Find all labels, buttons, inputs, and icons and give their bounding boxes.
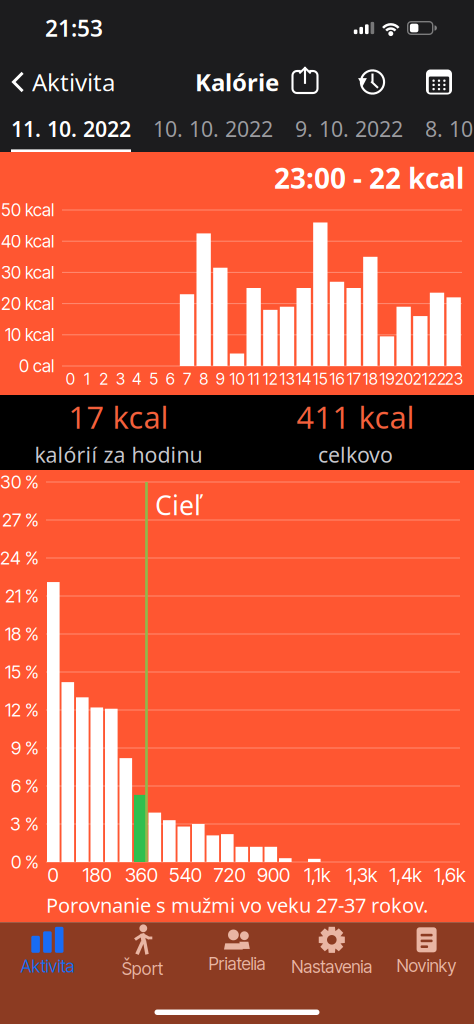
staticText: 15 %	[5, 661, 39, 683]
staticText: 9	[216, 369, 225, 389]
staticText: celkovo	[318, 440, 393, 468]
staticText: 6 %	[11, 775, 39, 797]
staticText: 30 kcal	[1, 262, 54, 283]
staticText: Aktivita	[32, 66, 115, 98]
staticText: 11. 10. 2022	[11, 114, 131, 143]
staticText: 18	[363, 369, 378, 389]
staticText: 16	[329, 369, 344, 389]
staticText: Novinky	[397, 955, 457, 976]
staticText: 2	[99, 369, 108, 389]
staticText: Cieľ	[155, 487, 201, 523]
staticText: 17	[347, 369, 361, 389]
staticText: 13	[279, 369, 294, 389]
button[interactable]: Zdieľať	[279, 56, 331, 108]
staticText: 18 %	[5, 623, 39, 645]
button[interactable]: Šport	[95, 923, 190, 981]
staticText: 8. 10. 2022	[425, 114, 474, 143]
staticText: 1	[84, 369, 90, 389]
staticText: 5	[149, 369, 158, 389]
button[interactable]: 10. 10. 2022	[142, 108, 284, 152]
button[interactable]: Kalendár	[413, 56, 465, 108]
staticText: 540	[169, 863, 202, 887]
button[interactable]: 11. 10. 2022	[0, 108, 142, 152]
staticText: 14	[296, 369, 312, 389]
staticText: 12	[263, 369, 278, 389]
staticText: kalórií za hodinu	[34, 440, 202, 468]
staticText: 27 %	[2, 509, 39, 531]
staticText: 7	[183, 369, 191, 389]
staticText: 23:00 - 22 kcal	[274, 159, 464, 197]
staticText: 4	[132, 369, 142, 389]
staticText: 10. 10. 2022	[153, 114, 273, 143]
button[interactable]: 9. 10. 2022	[284, 108, 414, 152]
staticText: 8	[199, 369, 208, 389]
staticText: 0	[66, 369, 75, 389]
staticText: 3 %	[10, 813, 39, 835]
button[interactable]: 8. 10. 2022	[414, 108, 474, 152]
staticText: Priatelia	[208, 953, 265, 974]
staticText: 12 %	[5, 699, 39, 721]
staticText: 9 %	[11, 737, 39, 759]
staticText: 6	[166, 369, 175, 389]
staticText: 1,6k	[434, 863, 466, 887]
staticText: 22	[428, 369, 446, 389]
staticText: 30 %	[0, 471, 39, 493]
staticText: 50 kcal	[1, 199, 54, 220]
staticText: 180	[83, 863, 112, 887]
button[interactable]: Novinky	[379, 923, 474, 981]
button[interactable]: Aktivita	[0, 923, 95, 981]
staticText: Porovnanie s mužmi vo veku 27-37 rokov.	[46, 892, 428, 918]
staticText: Nastavenia	[291, 956, 372, 977]
staticText: 0 cal	[19, 355, 54, 376]
staticText: 900	[257, 863, 290, 887]
staticText: 720	[213, 863, 245, 887]
staticText: 23	[445, 369, 463, 389]
staticText: 411 kcal	[296, 396, 414, 437]
staticText: 1,4k	[389, 863, 422, 887]
staticText: 20 kcal	[1, 293, 54, 314]
staticText: 15	[313, 369, 328, 389]
staticText: Šport	[122, 958, 163, 979]
staticText: 21	[413, 369, 428, 389]
staticText: 1,3k	[346, 863, 378, 887]
staticText: 0 %	[11, 851, 39, 873]
staticText: 20	[395, 369, 413, 389]
staticText: 19	[379, 369, 394, 389]
staticText: 1,1k	[304, 863, 331, 887]
staticText: Aktivita	[20, 956, 74, 977]
staticText: 24 %	[0, 547, 39, 569]
button[interactable]: Priatelia	[190, 923, 284, 981]
staticText: Kalórie	[195, 66, 279, 98]
staticText: 11	[248, 369, 260, 389]
button[interactable]: História	[346, 56, 398, 108]
staticText: 360	[125, 863, 158, 887]
staticText: 21 %	[5, 585, 39, 607]
staticText: 21:53	[45, 13, 103, 43]
staticText: 10	[229, 369, 244, 389]
staticText: 17 kcal	[68, 396, 168, 437]
button[interactable]: Nastavenia	[284, 923, 379, 981]
staticText: 9. 10. 2022	[295, 114, 403, 143]
staticText: 0	[47, 863, 58, 887]
staticText: 3	[116, 369, 125, 389]
button[interactable]: Aktivita	[0, 56, 123, 108]
staticText: 10 kcal	[5, 324, 54, 345]
staticText: 40 kcal	[1, 231, 54, 252]
